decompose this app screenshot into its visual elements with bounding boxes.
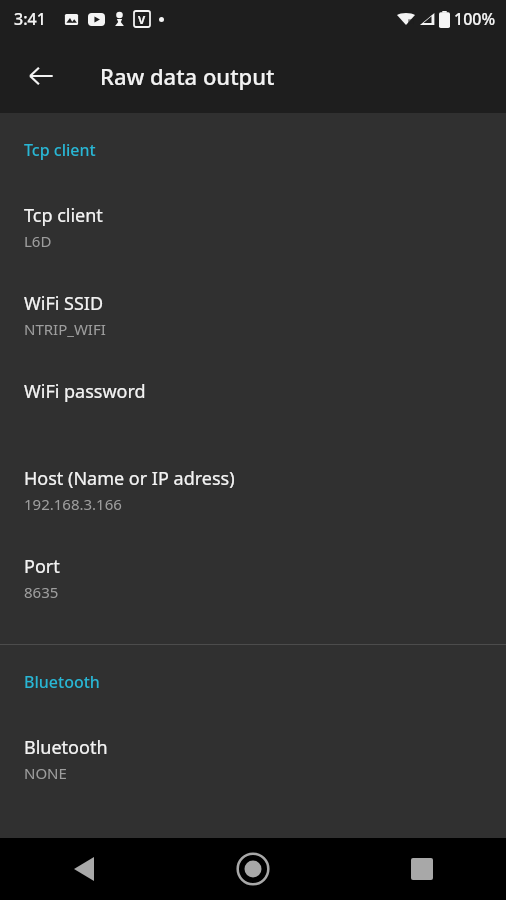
staticText: L6D: [24, 231, 52, 251]
button[interactable]: Back: [14, 49, 68, 103]
button[interactable]: Tcp client: [0, 193, 506, 281]
staticText: 100%: [454, 8, 496, 30]
button[interactable]: Bluetooth: [0, 725, 506, 813]
staticText: NONE: [24, 763, 67, 783]
staticText: Tcp client: [24, 203, 103, 228]
button[interactable]: Home: [168, 838, 337, 900]
staticText: WiFi SSID: [24, 291, 104, 316]
button[interactable]: WiFi SSID: [0, 281, 506, 369]
staticText: Bluetooth: [24, 735, 108, 760]
button[interactable]: Recents: [337, 838, 506, 900]
button[interactable]: WiFi password: [0, 369, 506, 456]
staticText: Bluetooth: [24, 671, 100, 693]
staticText: 3:41: [14, 8, 46, 30]
staticText: Tcp client: [24, 139, 96, 161]
staticText: Host (Name or IP adress): [24, 466, 235, 491]
staticText: Port: [24, 554, 60, 579]
staticText: 192.168.3.166: [24, 494, 122, 514]
staticText: V: [138, 12, 146, 27]
staticText: Raw data output: [100, 61, 275, 91]
staticText: WiFi password: [24, 379, 146, 404]
staticText: NTRIP_WIFI: [24, 319, 106, 339]
button[interactable]: Back: [0, 838, 168, 900]
staticText: 8635: [24, 582, 59, 602]
button[interactable]: Host (Name or IP adress): [0, 456, 506, 544]
button[interactable]: Port: [0, 544, 506, 632]
